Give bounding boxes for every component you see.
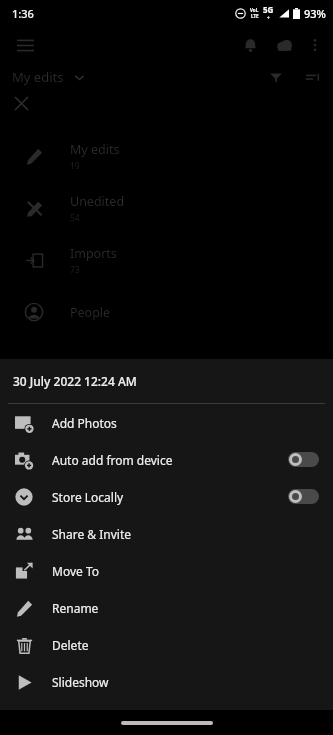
staticText: VoL <box>250 7 259 13</box>
button[interactable]: Menu <box>8 28 42 62</box>
staticText: Store Locally <box>52 489 124 505</box>
button[interactable]: Share & Invite <box>0 515 333 552</box>
staticText: 93% <box>304 6 326 21</box>
staticText: 73 <box>70 264 80 276</box>
button[interactable]: People <box>0 286 333 338</box>
staticText: Auto add from device <box>52 452 173 468</box>
button[interactable]: Close <box>8 90 34 116</box>
button[interactable] <box>288 452 319 467</box>
staticText: Rename <box>52 600 99 616</box>
staticText: Imports <box>70 245 117 262</box>
staticText: Delete <box>52 637 89 653</box>
button[interactable]: Move To <box>0 552 333 589</box>
staticText: Add Photos <box>52 415 117 431</box>
staticText: My edits <box>12 68 64 86</box>
button[interactable]: Sort <box>301 66 323 88</box>
staticText: Move To <box>52 563 99 579</box>
button[interactable]: My edits <box>0 130 333 182</box>
button[interactable]: Cloud sync <box>267 28 301 62</box>
button[interactable]: Slideshow <box>0 663 333 700</box>
staticText: 19 <box>70 160 80 172</box>
staticText: My edits <box>70 141 120 158</box>
staticText: 5G <box>263 4 274 15</box>
button[interactable]: Imports <box>0 234 333 286</box>
staticText: 30 July 2022 12:24 AM <box>13 373 137 389</box>
button[interactable]: Filter <box>265 66 287 88</box>
staticText: LTE <box>251 13 259 19</box>
button[interactable]: Add Photos <box>0 404 333 441</box>
staticText: + <box>267 15 270 22</box>
button[interactable]: Notifications <box>233 28 267 62</box>
staticText: People <box>70 304 111 321</box>
button[interactable] <box>288 489 319 504</box>
button[interactable]: Unedited <box>0 182 333 234</box>
button[interactable]: More options <box>301 31 329 59</box>
staticText: 1:36 <box>12 6 34 21</box>
staticText: 54 <box>70 212 80 224</box>
button[interactable]: Store Locally <box>0 478 333 515</box>
button[interactable]: Delete <box>0 626 333 663</box>
button[interactable]: My edits <box>12 68 85 86</box>
button[interactable]: Auto add from device <box>0 441 333 478</box>
button[interactable]: Rename <box>0 589 333 626</box>
staticText: Slideshow <box>52 674 109 690</box>
staticText: Share & Invite <box>52 526 132 542</box>
staticText: Unedited <box>70 193 125 210</box>
